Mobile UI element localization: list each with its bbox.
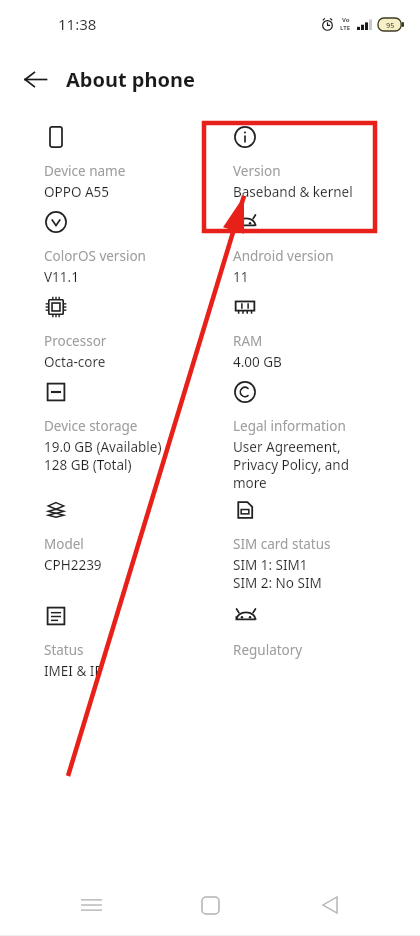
staticText: more — [233, 474, 267, 492]
button[interactable]: Home — [181, 876, 239, 934]
button[interactable]: RAM — [233, 294, 413, 379]
staticText: 11 — [233, 268, 249, 286]
button[interactable]: Version — [233, 124, 413, 209]
staticText: ColorOS version — [44, 247, 146, 265]
staticText: RAM — [233, 332, 263, 350]
staticText: Version — [233, 162, 281, 180]
staticText: SIM 2: No SIM — [233, 574, 322, 592]
button[interactable]: Legal information — [233, 379, 413, 497]
button[interactable]: Model — [44, 497, 224, 603]
staticText: V11.1 — [44, 268, 79, 286]
staticText: OPPO A55 — [44, 183, 110, 201]
staticText: 4.00 GB — [233, 353, 282, 371]
staticText: Device storage — [44, 417, 138, 435]
button[interactable]: Android version — [233, 209, 413, 294]
staticText: Baseband & kernel — [233, 183, 353, 201]
button[interactable]: Device storage — [44, 379, 224, 497]
staticText: Android version — [233, 247, 334, 265]
button[interactable]: ColorOS version — [44, 209, 224, 294]
staticText: User Agreement, — [233, 438, 341, 456]
staticText: 128 GB (Total) — [44, 456, 132, 474]
button[interactable]: Regulatory — [233, 603, 413, 688]
button[interactable]: Device name — [44, 124, 224, 209]
button[interactable]: SIM card status — [233, 497, 413, 603]
button[interactable]: Back — [301, 876, 359, 934]
staticText: SIM card status — [233, 535, 331, 553]
staticText: SIM 1: SIM1 — [233, 556, 308, 574]
staticText: Vo — [342, 16, 350, 24]
staticText: Status — [44, 641, 84, 659]
button[interactable]: Processor — [44, 294, 224, 379]
staticText: Octa-core — [44, 353, 106, 371]
staticText: CPH2239 — [44, 556, 102, 574]
staticText: About phone — [66, 66, 195, 93]
button[interactable]: Status — [44, 603, 224, 688]
staticText: Model — [44, 535, 84, 553]
staticText: Device name — [44, 162, 126, 180]
staticText: Legal information — [233, 417, 346, 435]
staticText: 95 — [386, 20, 395, 30]
staticText: 19.0 GB (Available) — [44, 438, 162, 456]
staticText: Privacy Policy, and — [233, 456, 350, 474]
staticText: Processor — [44, 332, 107, 350]
button[interactable]: Recent apps — [62, 876, 120, 934]
button[interactable]: Back — [12, 56, 58, 102]
staticText: LTE — [340, 24, 351, 32]
staticText: 11:38 — [58, 14, 97, 34]
staticText: IMEI & IP — [44, 662, 103, 680]
staticText: Regulatory — [233, 641, 303, 659]
